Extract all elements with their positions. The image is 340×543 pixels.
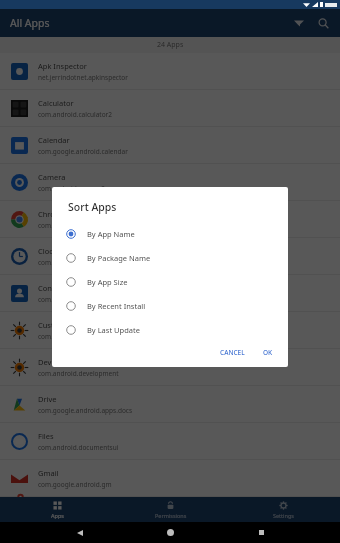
button[interactable]: Dev Tools — [0, 349, 340, 385]
button[interactable]: By App Size — [52, 270, 288, 294]
staticText: com.android.chrome — [38, 221, 102, 230]
staticText: Dev Tools — [38, 357, 72, 367]
button[interactable]: Calculator — [0, 90, 340, 126]
button[interactable]: Apk Inspector — [0, 53, 340, 89]
staticText: Contacts — [38, 283, 69, 293]
staticText: 24 Apps — [157, 40, 184, 50]
staticText: com.android.development — [38, 369, 119, 378]
staticText: net.jerrindotnet.apkinspector — [38, 73, 128, 82]
button[interactable]: Apps — [0, 497, 114, 522]
staticText: com.google.android.deskclock — [38, 258, 131, 267]
staticText: com.android.documentsui — [38, 443, 119, 452]
staticText: Permissions — [155, 512, 187, 519]
staticText: Settings — [273, 512, 294, 519]
button[interactable]: Customize — [0, 312, 340, 348]
staticText: All Apps — [10, 16, 50, 30]
staticText: Chrome — [38, 209, 67, 219]
staticText: Camera — [38, 172, 66, 182]
staticText: By Recent Install — [87, 301, 146, 311]
staticText: Sort Apps — [68, 200, 117, 214]
staticText: Files — [38, 431, 54, 441]
staticText: By App Size — [87, 277, 128, 287]
staticText: Apps — [51, 512, 64, 519]
staticText: com.google.android.calendar — [38, 147, 128, 156]
button[interactable]: Clock — [0, 238, 340, 274]
staticText: com.android.camera2 — [38, 184, 105, 193]
staticText: OK — [263, 348, 273, 357]
button[interactable]: CANCEL — [213, 344, 252, 361]
button[interactable]: Back — [69, 522, 91, 543]
button[interactable]: Files — [0, 423, 340, 459]
button[interactable]: Sort — [287, 11, 311, 35]
staticText: Calendar — [38, 135, 70, 145]
staticText: By Package Name — [87, 253, 151, 263]
staticText: com.android.contacts — [38, 295, 105, 304]
button[interactable]: Home — [159, 522, 181, 543]
button[interactable]: By Package Name — [52, 246, 288, 270]
staticText: Customize — [38, 320, 75, 330]
button[interactable]: By App Name — [52, 222, 288, 246]
staticText: CANCEL — [220, 348, 245, 357]
button[interactable]: Permissions — [114, 497, 227, 522]
button[interactable]: Calendar — [0, 127, 340, 163]
staticText: Clock — [38, 246, 57, 256]
button[interactable]: Contacts — [0, 275, 340, 311]
button[interactable]: OK — [256, 344, 280, 361]
staticText: com.google.android.apps.docs — [38, 406, 133, 415]
button[interactable]: Search — [311, 11, 335, 35]
button[interactable]: By Recent Install — [52, 294, 288, 318]
staticText: com.android.calculator2 — [38, 110, 113, 119]
button[interactable]: Recents — [250, 522, 272, 543]
button[interactable]: Chrome — [0, 201, 340, 237]
staticText: com.google.android.gm — [38, 480, 112, 489]
button[interactable]: Settings — [227, 497, 340, 522]
staticText: Calculator — [38, 98, 74, 108]
button[interactable]: By Last Update — [52, 318, 288, 342]
staticText: By App Name — [87, 229, 135, 239]
staticText: Gmail — [38, 468, 59, 478]
button[interactable]: Gmail — [0, 460, 340, 496]
button[interactable]: Drive — [0, 386, 340, 422]
staticText: Drive — [38, 394, 57, 404]
button[interactable]: Camera — [0, 164, 340, 200]
staticText: Apk Inspector — [38, 61, 87, 71]
staticText: com.android.customization — [38, 332, 122, 341]
staticText: By Last Update — [87, 325, 140, 335]
